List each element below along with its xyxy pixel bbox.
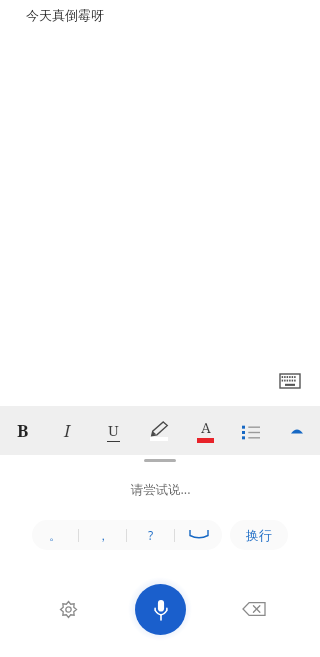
button[interactable]: Collapse — [274, 406, 320, 455]
staticText: A — [201, 418, 211, 437]
button[interactable]: Underline — [90, 406, 136, 455]
button[interactable] — [175, 520, 222, 550]
button[interactable]: ? — [127, 520, 174, 550]
staticText: 换行 — [246, 527, 272, 543]
button[interactable]: Backspace — [234, 589, 274, 629]
staticText: 请尝试说... — [130, 481, 191, 498]
staticText: B — [17, 419, 29, 442]
button[interactable]: List — [228, 406, 274, 455]
staticText: 今天真倒霉呀 — [26, 7, 104, 23]
button[interactable]: Keyboard — [268, 359, 312, 403]
button[interactable]: 。 — [32, 520, 78, 550]
button[interactable]: Bold — [0, 406, 45, 455]
button[interactable]: 换行 — [230, 520, 288, 550]
staticText: ， — [97, 528, 109, 543]
staticText: 。 — [49, 528, 61, 543]
button[interactable]: ， — [79, 520, 126, 550]
button[interactable]: Italic — [45, 406, 90, 455]
staticText: ? — [148, 527, 154, 543]
button[interactable]: Microphone — [128, 577, 192, 641]
button[interactable]: Highlight — [136, 406, 182, 455]
staticText: U — [108, 420, 119, 440]
button[interactable]: Text color — [182, 406, 228, 455]
staticText: I — [64, 419, 71, 442]
button[interactable]: Settings — [48, 589, 88, 629]
